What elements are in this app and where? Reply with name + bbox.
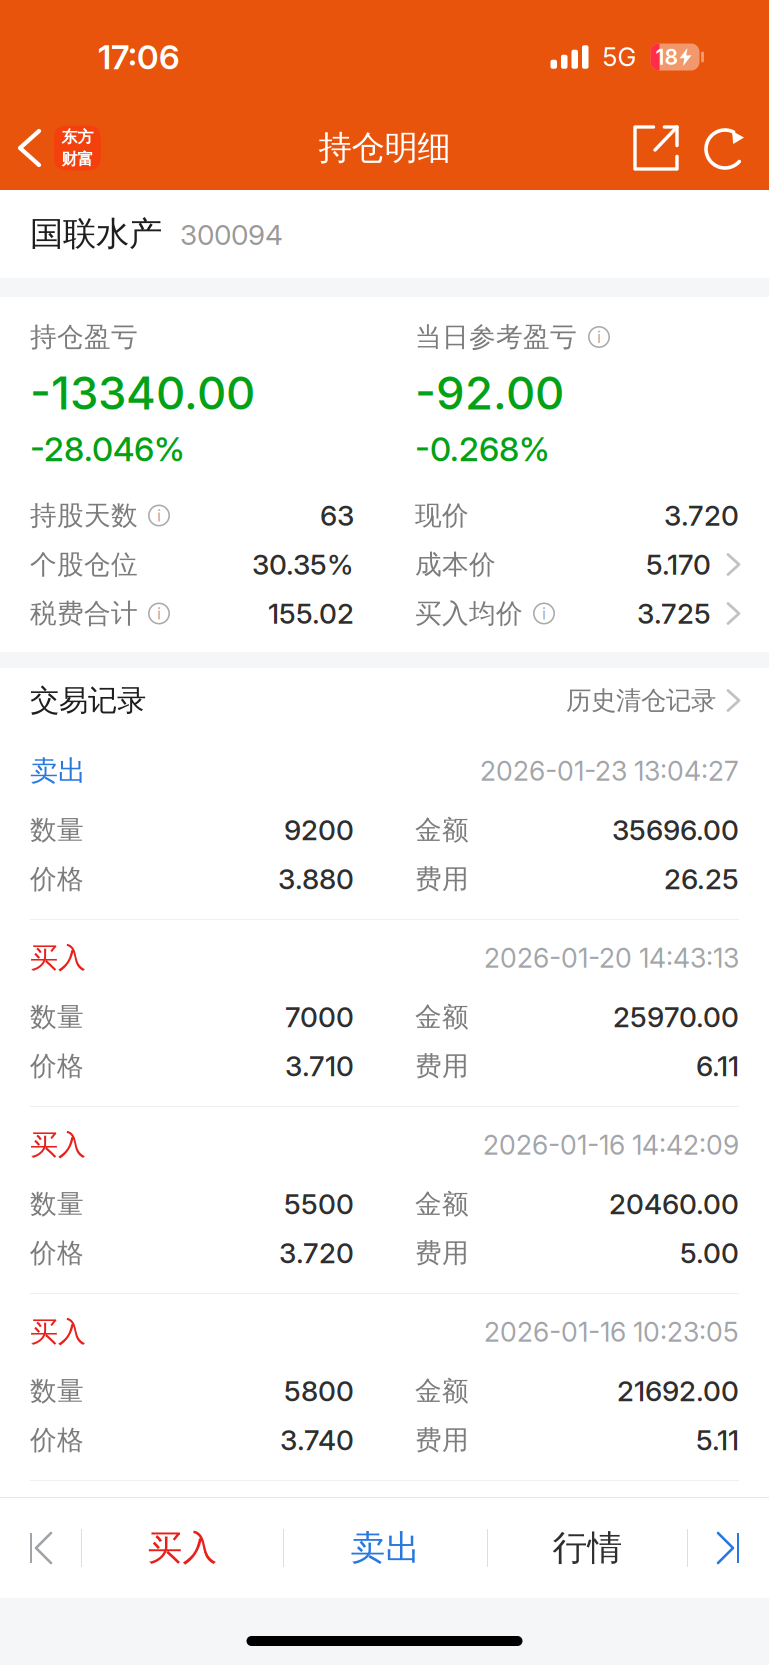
staticText: 价格: [30, 1049, 84, 1083]
staticText: 3.710: [285, 1049, 354, 1083]
staticText: 税费合计: [30, 597, 138, 630]
staticText: 2026-01-20 14:43:13: [484, 942, 739, 974]
staticText: 2026-01-23 13:04:27: [480, 755, 739, 787]
staticText: 数量: [30, 1000, 84, 1034]
staticText: 交易记录: [30, 682, 146, 719]
staticText: 买入: [147, 1526, 217, 1570]
staticText: 金额: [415, 813, 469, 847]
staticText: 东方: [61, 127, 93, 147]
staticText: 个股仓位: [30, 548, 138, 581]
staticText: 7000: [285, 1000, 354, 1034]
staticText: -28.046%: [30, 429, 185, 469]
staticText: 3.740: [280, 1423, 354, 1457]
staticText: 数量: [30, 1374, 84, 1408]
staticText: -13340.00: [30, 366, 255, 420]
staticText: 18: [655, 44, 678, 70]
staticText: 卖出: [30, 753, 86, 789]
staticText: 卖出: [350, 1526, 420, 1570]
staticText: 25970.00: [613, 1000, 739, 1034]
staticText: 国联水产: [30, 213, 162, 255]
staticText: 成本价: [415, 548, 496, 581]
staticText: 费用: [415, 862, 469, 896]
staticText: 历史清仓记录: [566, 684, 716, 716]
button[interactable]: 买入: [82, 1498, 283, 1598]
staticText: 费用: [415, 1236, 469, 1270]
staticText: 63: [320, 499, 354, 532]
staticText: 现价: [415, 499, 469, 532]
staticText: 持仓盈亏: [30, 320, 138, 354]
staticText: 持仓明细: [318, 127, 450, 169]
staticText: 价格: [30, 862, 84, 896]
staticText: 价格: [30, 1423, 84, 1457]
staticText: i: [542, 604, 546, 623]
staticText: 3.720: [279, 1236, 354, 1270]
staticText: i: [597, 327, 601, 347]
staticText: 30.35%: [252, 548, 354, 581]
staticText: 费用: [415, 1049, 469, 1083]
button[interactable]: 卖出: [284, 1498, 487, 1598]
staticText: 155.02: [268, 597, 354, 630]
staticText: 26.25: [664, 862, 739, 896]
staticText: 5.00: [680, 1236, 739, 1270]
staticText: 行情: [552, 1526, 622, 1570]
staticText: 17:06: [98, 37, 180, 77]
staticText: 数量: [30, 813, 84, 847]
staticText: -92.00: [415, 366, 564, 420]
staticText: 5800: [284, 1374, 354, 1408]
button[interactable]: 上一只: [0, 1498, 81, 1598]
staticText: -0.268%: [415, 429, 550, 469]
staticText: 5.170: [646, 548, 711, 581]
staticText: 3.725: [637, 597, 711, 630]
button[interactable]: 刷新: [688, 115, 769, 181]
button[interactable]: 返回: [0, 117, 101, 178]
staticText: 金额: [415, 1000, 469, 1034]
staticText: 2026-01-16 10:23:05: [484, 1316, 739, 1348]
staticText: 买入: [30, 940, 86, 976]
staticText: 数量: [30, 1187, 84, 1221]
staticText: 9200: [284, 813, 354, 847]
staticText: 买入均价: [415, 597, 523, 630]
staticText: i: [157, 604, 161, 623]
staticText: 持股天数: [30, 499, 138, 532]
staticText: 21692.00: [617, 1374, 739, 1408]
button[interactable]: 下一只: [688, 1498, 769, 1598]
staticText: 20460.00: [609, 1187, 739, 1221]
staticText: 3.720: [664, 499, 739, 532]
staticText: 买入: [30, 1127, 86, 1163]
staticText: 2026-01-16 14:42:09: [483, 1129, 739, 1161]
staticText: 5.11: [696, 1423, 739, 1457]
staticText: 5G: [602, 42, 636, 72]
staticText: 金额: [415, 1374, 469, 1408]
staticText: 6.11: [696, 1049, 739, 1083]
staticText: 买入: [30, 1314, 86, 1350]
staticText: 当日参考盈亏: [415, 320, 577, 354]
button[interactable]: 行情: [488, 1498, 687, 1598]
staticText: 5500: [284, 1187, 354, 1221]
staticText: 财富: [61, 149, 93, 169]
staticText: 价格: [30, 1236, 84, 1270]
staticText: 300094: [180, 218, 283, 252]
staticText: 35696.00: [612, 813, 739, 847]
staticText: 费用: [415, 1423, 469, 1457]
staticText: 3.880: [278, 862, 354, 896]
button[interactable]: 分享: [624, 115, 688, 181]
staticText: i: [157, 506, 161, 525]
staticText: 金额: [415, 1187, 469, 1221]
button[interactable]: 历史清仓记录: [566, 672, 739, 728]
